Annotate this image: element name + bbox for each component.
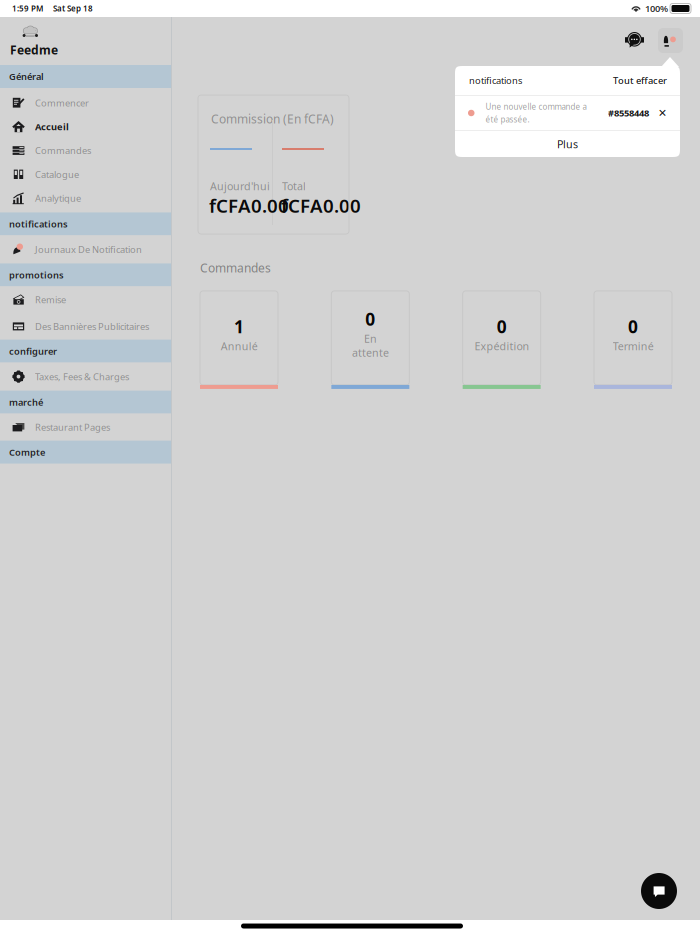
staticText: #8558448	[608, 107, 649, 119]
staticText: Terminé	[612, 339, 653, 353]
staticText: Commandes	[200, 260, 271, 276]
button[interactable]: Journaux De Notification	[0, 235, 171, 263]
staticText: Analytique	[35, 192, 81, 204]
staticText: Accueil	[35, 120, 69, 133]
button[interactable]: Tout effacer	[613, 66, 680, 95]
staticText: Général	[9, 70, 44, 83]
staticText: 100%	[645, 2, 668, 15]
staticText: été passée.	[485, 114, 529, 125]
button[interactable]: Support	[625, 32, 644, 48]
staticText: 0	[497, 315, 507, 338]
staticText: Expédition	[474, 339, 529, 353]
staticText: Restaurant Pages	[35, 421, 110, 433]
button[interactable]: 0	[463, 291, 541, 389]
staticText: Remise	[35, 293, 66, 306]
staticText: Aujourd'hui	[210, 179, 270, 193]
staticText: promotions	[9, 269, 64, 281]
staticText: Feedme	[10, 42, 58, 58]
staticText: Des Bannières Publicitaires	[35, 320, 149, 332]
staticText: Commandes	[35, 144, 91, 157]
staticText: 0	[365, 307, 375, 330]
staticText: Tout effacer	[613, 74, 667, 87]
staticText: fCFA0.00	[281, 193, 361, 218]
staticText: 1:59 PM	[12, 3, 43, 14]
staticText: En attente	[352, 331, 389, 360]
staticText: Compte	[9, 446, 45, 458]
button[interactable]: Commandes	[0, 139, 171, 162]
staticText: Taxes, Fees & Charges	[35, 370, 129, 383]
staticText: 0	[628, 315, 638, 338]
staticText: Total	[282, 179, 306, 193]
button[interactable]: 0	[594, 291, 672, 389]
button[interactable]: Plus	[455, 131, 680, 157]
staticText: Une nouvelle commande a	[485, 101, 586, 112]
staticText: Commission (En fCFA)	[211, 111, 334, 127]
button[interactable]: Notifications	[658, 28, 683, 53]
staticText: 1	[234, 315, 244, 338]
staticText: Catalogue	[35, 168, 79, 180]
staticText: notifications	[469, 74, 522, 87]
staticText: Journaux De Notification	[35, 243, 142, 256]
staticText: Plus	[557, 137, 578, 151]
staticText: Annulé	[220, 339, 257, 353]
staticText: Commencer	[35, 97, 89, 109]
staticText: notifications	[9, 218, 68, 230]
button[interactable]: Analytique	[0, 186, 171, 210]
button[interactable]: 1	[200, 291, 278, 389]
button[interactable]: Une nouvelle commande a	[455, 96, 680, 130]
button[interactable]: Commencer	[0, 91, 171, 115]
button[interactable]: 0	[331, 291, 409, 389]
staticText: marché	[9, 396, 43, 408]
button[interactable]: Des Bannières Publicitaires	[0, 313, 171, 340]
button[interactable]: Restaurant Pages	[0, 414, 171, 441]
staticText: ✕	[658, 107, 667, 119]
staticText: configurer	[9, 345, 57, 357]
button[interactable]: Taxes, Fees & Charges	[0, 363, 171, 391]
button[interactable]: Accueil	[0, 115, 171, 139]
button[interactable]: Chat	[641, 873, 677, 909]
button[interactable]: Catalogue	[0, 162, 171, 186]
button[interactable]: notifications	[455, 66, 522, 95]
button[interactable]: Remise	[0, 286, 171, 313]
staticText: Sat Sep 18	[53, 3, 93, 14]
staticText: fCFA0.00	[209, 193, 289, 218]
